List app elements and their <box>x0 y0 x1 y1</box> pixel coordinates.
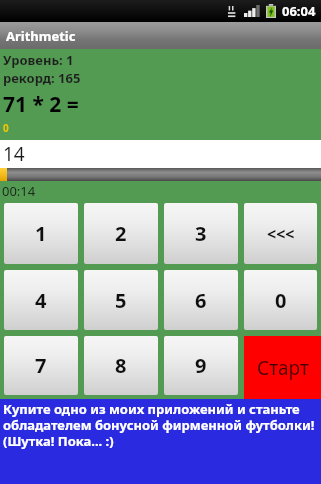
staticText: 14 <box>3 141 25 167</box>
button[interactable]: 7 <box>4 336 78 395</box>
staticText: рекорд: 165 <box>3 69 81 87</box>
button[interactable]: 4 <box>4 270 78 330</box>
staticText: Старт <box>257 355 309 381</box>
staticText: 0 <box>275 287 287 314</box>
staticText: 7 <box>35 352 47 379</box>
button[interactable]: 5 <box>84 270 158 330</box>
staticText: 3 <box>195 220 207 247</box>
button[interactable]: 6 <box>164 270 238 330</box>
button[interactable]: Купите одно из моих приложений и станьте… <box>0 399 321 484</box>
staticText: 5 <box>115 287 127 314</box>
staticText: 06:04 <box>282 2 316 20</box>
staticText: 00:14 <box>2 182 36 200</box>
staticText: 1 <box>35 220 47 247</box>
staticText: 71 * 2 = <box>3 90 79 119</box>
button[interactable]: Старт <box>244 336 321 399</box>
staticText: 0 <box>3 121 9 135</box>
button[interactable]: 3 <box>164 203 238 264</box>
button[interactable]: 1 <box>4 203 78 264</box>
staticText: 9 <box>195 352 207 379</box>
button[interactable]: 8 <box>84 336 158 395</box>
staticText: 8 <box>115 352 127 379</box>
button[interactable]: 0 <box>244 270 317 330</box>
staticText: 6 <box>195 287 207 314</box>
staticText: Уровень: 1 <box>3 51 74 69</box>
staticText: 2 <box>115 220 127 247</box>
button[interactable]: Backspace <box>244 203 317 264</box>
button[interactable]: 9 <box>164 336 238 395</box>
staticText: Купите одно из моих приложений и станьте… <box>3 400 319 449</box>
staticText: Arithmetic <box>6 27 76 45</box>
staticText: 4 <box>35 287 47 314</box>
staticText: <<< <box>267 223 295 245</box>
button[interactable]: 2 <box>84 203 158 264</box>
